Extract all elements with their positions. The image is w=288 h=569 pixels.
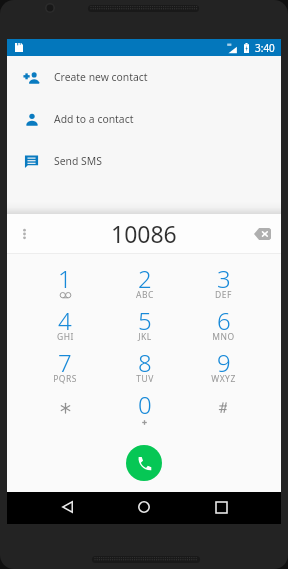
- staticText: 1: [58, 262, 72, 295]
- staticText: Create new contact: [54, 70, 148, 84]
- staticText: 5: [138, 304, 152, 337]
- button[interactable]: Backspace: [249, 221, 275, 247]
- button[interactable]: 0: [105, 388, 184, 430]
- staticText: 3:40: [255, 41, 275, 55]
- staticText: 0: [138, 388, 152, 421]
- button[interactable]: Call: [126, 445, 162, 481]
- button[interactable]: 7: [25, 346, 105, 388]
- staticText: 6: [217, 304, 231, 337]
- button[interactable]: More options: [11, 221, 37, 247]
- staticText: 3: [217, 262, 231, 295]
- staticText: 4: [58, 304, 72, 337]
- button[interactable]: Create new contact: [7, 56, 281, 98]
- staticText: 9: [217, 346, 231, 379]
- staticText: GHI: [57, 331, 74, 343]
- button[interactable]: Recents: [205, 491, 237, 523]
- button[interactable]: 6: [184, 304, 263, 346]
- staticText: DEF: [215, 289, 232, 301]
- staticText: Add to a contact: [54, 112, 134, 126]
- staticText: MNO: [212, 331, 235, 343]
- staticText: ABC: [136, 289, 154, 301]
- button[interactable]: Back: [51, 491, 83, 523]
- button[interactable]: [25, 388, 105, 430]
- button[interactable]: 8: [105, 346, 184, 388]
- staticText: 2: [138, 262, 152, 295]
- button[interactable]: 9: [184, 346, 263, 388]
- button[interactable]: 1: [25, 262, 105, 304]
- button[interactable]: 5: [105, 304, 184, 346]
- button[interactable]: Home: [128, 491, 160, 523]
- button[interactable]: Send SMS: [7, 140, 281, 182]
- button[interactable]: Add to a contact: [7, 98, 281, 140]
- staticText: 10086: [111, 218, 177, 249]
- staticText: JKL: [138, 331, 152, 343]
- staticText: PQRS: [53, 373, 77, 385]
- button[interactable]: 4: [25, 304, 105, 346]
- staticText: 8: [138, 346, 152, 379]
- button[interactable]: 2: [105, 262, 184, 304]
- staticText: WXYZ: [211, 373, 236, 385]
- button[interactable]: 3: [184, 262, 263, 304]
- button[interactable]: [184, 388, 263, 430]
- staticText: TUV: [136, 373, 154, 385]
- staticText: 7: [58, 346, 72, 379]
- staticText: Send SMS: [54, 154, 102, 168]
